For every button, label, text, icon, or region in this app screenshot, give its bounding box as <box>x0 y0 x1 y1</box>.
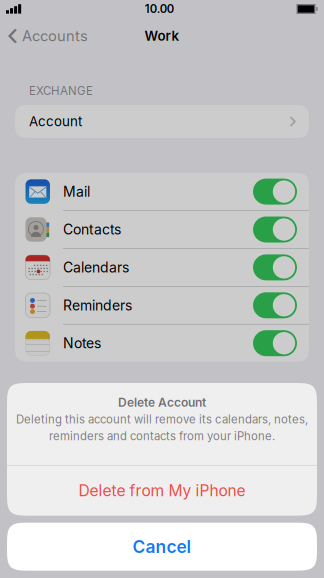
button[interactable]: Delete from My iPhone <box>7 466 317 516</box>
staticText: Work <box>144 28 179 44</box>
staticText: Account <box>29 113 82 129</box>
staticText: Cancel <box>132 536 191 557</box>
staticText: EXCHANGE <box>29 84 93 98</box>
staticText: Delete from My iPhone <box>78 481 245 500</box>
staticText: 10.00 <box>145 2 174 16</box>
button[interactable]: Accounts <box>0 20 98 52</box>
staticText: Deleting this account will remove its ca… <box>16 412 308 426</box>
staticText: Accounts <box>22 27 88 45</box>
staticText: Calendars <box>63 259 129 276</box>
button[interactable]: Calendars <box>15 249 309 286</box>
staticText: Notes <box>63 335 101 352</box>
button[interactable]: Cancel <box>7 523 317 571</box>
button[interactable]: Reminders <box>15 287 309 324</box>
button[interactable]: Contacts <box>15 211 309 248</box>
staticText: Reminders <box>63 297 132 314</box>
button[interactable]: Account <box>15 105 309 138</box>
staticText: reminders and contacts from your iPhone. <box>49 429 275 443</box>
staticText: Delete Account <box>118 395 206 409</box>
staticText: Mail <box>63 183 90 200</box>
button[interactable]: Mail <box>15 173 309 210</box>
staticText: Contacts <box>63 221 121 238</box>
button[interactable]: Notes <box>15 325 309 362</box>
